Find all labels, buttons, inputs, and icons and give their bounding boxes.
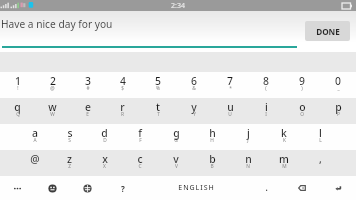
staticText: ? [121,183,125,194]
staticText: ( [265,85,267,92]
staticText: ! [17,85,19,92]
staticText: z [67,152,72,166]
staticText: A [33,137,37,144]
button[interactable]: 3 [70,72,105,98]
staticText: l [319,126,322,140]
staticText: & [192,85,196,92]
staticText: 2:34 [171,1,185,11]
staticText: M [282,163,287,170]
staticText: Z [68,163,71,170]
button[interactable]: ENGLISH [141,176,248,200]
staticText: K [283,137,286,144]
button[interactable]: Emoji [35,176,70,200]
button[interactable]: b [194,150,230,176]
button[interactable]: x [87,150,122,176]
button[interactable]: a [17,124,52,150]
button[interactable]: Enter [320,176,356,200]
staticText: G [174,137,178,144]
button[interactable]: @ [17,150,52,176]
staticText: Have a nice day for you [1,17,113,31]
button[interactable]: d [87,124,122,150]
button[interactable]: s [52,124,87,150]
staticText: N [246,163,250,170]
button[interactable]: y [176,98,212,124]
button[interactable]: DONE [305,21,350,41]
button[interactable]: 5 [140,72,176,98]
button[interactable]: 4 [105,72,140,98]
button[interactable]: 9 [284,72,320,98]
button[interactable]: , [302,150,338,176]
staticText: U [228,111,232,118]
staticText: DONE [316,26,340,37]
button[interactable]: o [284,98,320,124]
button[interactable]: m [266,150,302,176]
staticText: j [247,126,250,140]
button[interactable]: i [248,98,284,124]
staticText: P [337,111,340,118]
button[interactable]: ? [105,176,141,200]
staticText: w [48,100,57,114]
staticText: L [319,137,322,144]
staticText: f [138,126,142,140]
staticText: b [209,152,216,166]
button[interactable]: Change keyboard [70,176,105,200]
button[interactable]: 1 [0,72,35,98]
button[interactable]: h [194,124,230,150]
staticText: 2 [50,74,56,88]
button[interactable]: j [230,124,266,150]
button[interactable]: 2 [35,72,70,98]
button[interactable]: n [230,150,266,176]
button[interactable]: w [35,98,70,124]
button[interactable]: u [212,98,248,124]
staticText: H [210,137,214,144]
staticText: a [32,126,38,140]
button[interactable]: c [122,150,158,176]
staticText: v [173,152,179,166]
staticText: R [121,111,124,118]
staticText: , [319,152,322,166]
button[interactable]: More symbols [0,176,35,200]
button[interactable]: z [52,150,87,176]
staticText: T [157,111,160,118]
staticText: W [50,111,55,118]
staticText: s [67,126,73,140]
staticText: J [247,137,249,144]
staticText: 0 [335,74,341,88]
button[interactable]: g [158,124,194,150]
staticText: @ [50,85,55,92]
staticText: $ [121,85,124,92]
staticText: 1 [15,74,21,88]
staticText: . [265,182,268,193]
button[interactable]: r [105,98,140,124]
staticText: Y [193,111,196,118]
button[interactable]: . [248,176,284,200]
staticText: * [229,85,232,92]
staticText: 9 [299,74,305,88]
button[interactable]: 7 [212,72,248,98]
staticText: F [139,137,142,144]
button[interactable]: f [122,124,158,150]
staticText: C [138,163,142,170]
button[interactable]: Backspace [284,176,320,200]
staticText: S [68,137,71,144]
staticText: % [156,85,160,92]
button[interactable]: e [70,98,105,124]
staticText: 5 [155,74,161,88]
button[interactable]: 8 [248,72,284,98]
staticText: 4 [120,74,126,88]
button[interactable]: p [320,98,356,124]
button[interactable]: v [158,150,194,176]
staticText: o [299,100,306,114]
button[interactable]: l [302,124,338,150]
button[interactable]: 0 [320,72,356,98]
staticText: # [86,85,90,92]
button[interactable]: 6 [176,72,212,98]
button[interactable]: t [140,98,176,124]
staticText: m [279,152,289,166]
staticText: i [265,100,268,114]
staticText: y [191,100,197,114]
button[interactable]: k [266,124,302,150]
staticText: Q [16,111,20,118]
button[interactable]: q [0,98,35,124]
staticText: r [120,100,125,114]
